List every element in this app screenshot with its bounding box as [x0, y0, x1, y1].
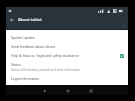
button[interactable]: Home — [63, 86, 72, 95]
staticText: Legal information — [11, 76, 40, 81]
button[interactable]: Status — [6, 60, 128, 74]
button[interactable]: Back — [40, 86, 49, 95]
button[interactable]: Send feedback about device — [6, 42, 128, 51]
staticText: About tablet — [18, 17, 42, 22]
button[interactable]: Recent apps — [86, 86, 95, 95]
button[interactable]: Legal information — [6, 74, 128, 83]
staticText: Send feedback about device — [11, 44, 56, 49]
staticText: System update — [11, 35, 35, 40]
staticText: Help & how-to / legal and safety assista… — [11, 53, 80, 58]
staticText: Status — [11, 62, 21, 67]
staticText: Status of the battery, network and other… — [11, 68, 80, 72]
button[interactable]: Navigate up — [8, 16, 15, 23]
button[interactable]: System update — [6, 33, 128, 42]
button[interactable]: Help & how-to / legal and safety assista… — [6, 51, 128, 60]
button[interactable]: More options — [122, 24, 127, 29]
other: Enabled — [120, 54, 124, 58]
